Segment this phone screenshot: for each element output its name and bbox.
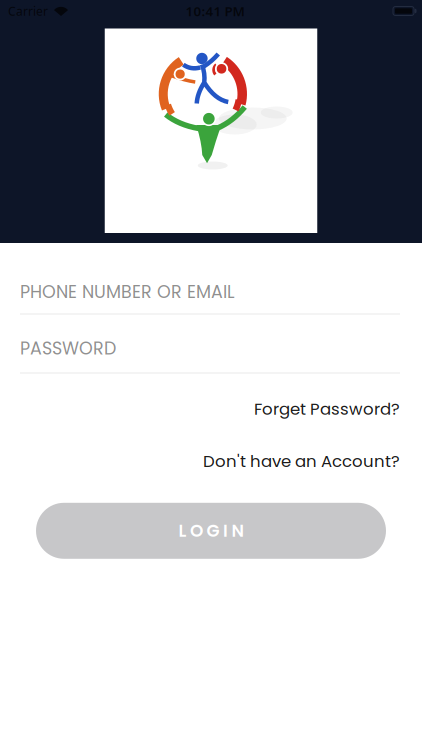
staticText: LOGIN (178, 519, 243, 543)
button[interactable]: Don't have an Account? (203, 450, 400, 473)
button[interactable]: PHONE NUMBER OR EMAIL (20, 280, 400, 314)
staticText: Don't have an Account? (203, 450, 400, 473)
button[interactable]: PASSWORD (20, 336, 400, 373)
staticText: Forget Password? (254, 397, 400, 421)
staticText: PASSWORD (20, 336, 116, 361)
staticText: 10:41 PM (185, 2, 244, 20)
staticText: PHONE NUMBER OR EMAIL (20, 280, 235, 304)
button[interactable]: Forget Password? (254, 397, 400, 421)
button[interactable]: LOGIN (36, 503, 386, 559)
staticText: Carrier (8, 3, 48, 19)
